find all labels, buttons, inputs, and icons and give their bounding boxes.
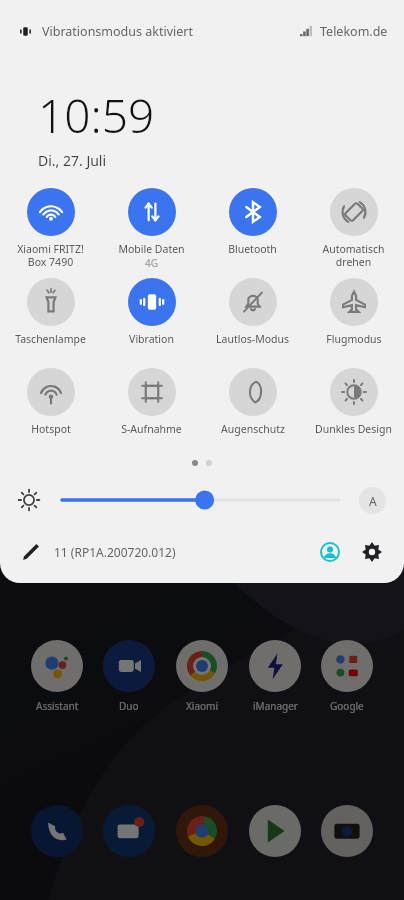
button[interactable]: Bluetooth <box>202 184 303 274</box>
staticText: Augenschutz <box>221 422 285 436</box>
staticText: Duo <box>119 699 139 713</box>
button[interactable] <box>31 640 83 692</box>
staticText: 11 (RP1A.200720.012) <box>54 544 176 560</box>
button[interactable]: Edit tiles <box>18 539 44 565</box>
button[interactable] <box>321 805 373 857</box>
button[interactable]: Augenschutz <box>202 364 303 454</box>
button[interactable]: Vibration <box>101 274 202 364</box>
staticText: Bluetooth <box>228 242 277 256</box>
staticText: Xiaomi FRITZ! Box 7490 <box>17 242 84 269</box>
button[interactable]: Dunkles Design <box>303 364 404 454</box>
button[interactable]: Taschenlampe <box>0 274 101 364</box>
staticText: A <box>369 493 377 509</box>
staticText: Flugmodus <box>326 332 382 346</box>
staticText: Vibration <box>129 332 174 346</box>
button[interactable] <box>176 805 228 857</box>
button[interactable] <box>249 805 301 857</box>
button[interactable]: User account <box>316 538 344 566</box>
staticText: Hotspot <box>31 422 71 436</box>
button[interactable]: Lautlos-Modus <box>202 274 303 364</box>
button[interactable] <box>176 640 228 692</box>
other: Vibration mode <box>18 24 33 39</box>
staticText: 4G <box>145 256 158 270</box>
staticText: Mobile Daten <box>118 242 185 256</box>
button[interactable] <box>103 640 155 692</box>
staticText: 10:59 <box>38 84 155 147</box>
button[interactable] <box>31 805 83 857</box>
staticText: Google <box>330 699 364 713</box>
staticText: S-Aufnahme <box>121 422 182 436</box>
staticText: Di., 27. Juli <box>38 151 107 170</box>
button[interactable]: Settings <box>358 538 386 566</box>
other: Brightness <box>18 489 40 511</box>
staticText: Vibrationsmodus aktiviert <box>42 23 193 40</box>
button[interactable] <box>249 640 301 692</box>
button[interactable]: Hotspot <box>0 364 101 454</box>
button[interactable]: Automatisch drehen <box>303 184 404 274</box>
button[interactable]: Mobile Daten <box>101 184 202 274</box>
staticText: Xiaomi <box>186 699 219 713</box>
staticText: Assistant <box>36 699 79 713</box>
staticText: iManager <box>253 699 298 713</box>
button[interactable]: A <box>359 487 386 514</box>
staticText: Automatisch drehen <box>322 242 385 269</box>
staticText: Telekom.de <box>320 23 388 40</box>
staticText: Dunkles Design <box>315 422 392 436</box>
button[interactable]: Xiaomi FRITZ! Box 7490 <box>0 184 101 274</box>
button[interactable]: S-Aufnahme <box>101 364 202 454</box>
button[interactable] <box>62 487 339 513</box>
staticText: Taschenlampe <box>15 332 86 346</box>
staticText: Lautlos-Modus <box>216 332 289 346</box>
button[interactable] <box>103 805 155 857</box>
button[interactable] <box>321 640 373 692</box>
button[interactable]: Flugmodus <box>303 274 404 364</box>
